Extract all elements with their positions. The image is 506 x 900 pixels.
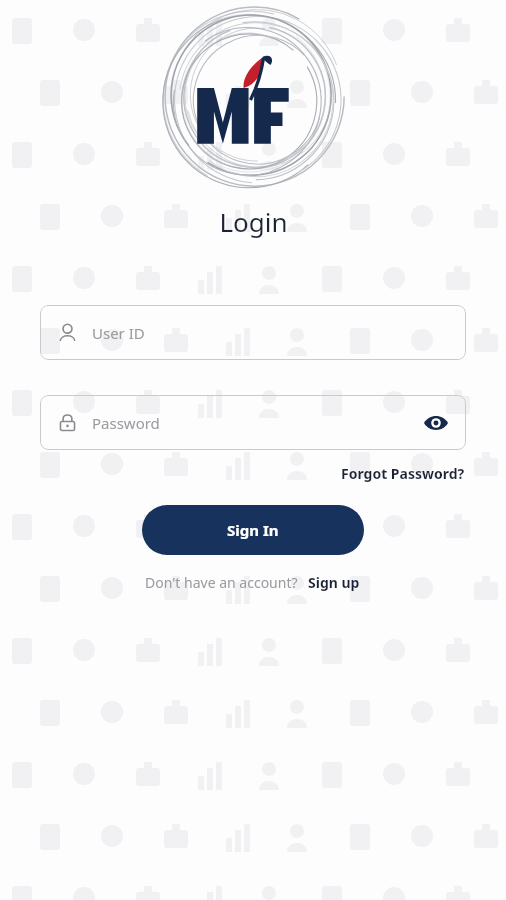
button[interactable]: Forgot Password? <box>339 462 467 485</box>
button[interactable]: Password <box>40 395 466 450</box>
button[interactable]: Sign up <box>306 571 362 594</box>
staticText: User ID <box>92 323 145 343</box>
staticText: Forgot Password? <box>341 464 465 483</box>
staticText: Sign In <box>227 520 279 540</box>
button[interactable]: Sign In <box>142 505 364 555</box>
staticText: Sign up <box>308 573 360 592</box>
staticText: Don't have an account? <box>145 573 298 592</box>
staticText: Login <box>219 204 288 239</box>
button[interactable]: User ID <box>40 305 466 360</box>
staticText: Password <box>92 413 418 433</box>
button[interactable]: Show password <box>418 405 454 441</box>
